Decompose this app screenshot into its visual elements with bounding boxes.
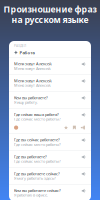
button[interactable]: Share xyxy=(81,125,85,130)
button[interactable]: Где вы работаете? xyxy=(9,151,91,167)
staticText: Кем вы работаете сейчас? xyxy=(14,188,61,193)
button[interactable]: Меня зовут Алексей. xyxy=(9,75,91,91)
staticText: Я могу работать здесь? xyxy=(14,176,56,181)
staticText: Произношение фраз xyxy=(3,3,96,15)
staticText: Меня зовут Алексей. xyxy=(14,83,51,88)
staticText: Где сейчас место работы? xyxy=(14,142,61,147)
staticText: Меня зовут Алексей. xyxy=(14,66,51,71)
staticText: Где вы работаете сейчас? xyxy=(14,171,60,176)
button[interactable]: Кем вы работаете сейчас? xyxy=(9,185,91,200)
button[interactable]: Кем вы работаете? xyxy=(9,92,91,108)
staticText: Где вы работаете? xyxy=(14,154,47,159)
staticText: Где сейчас место работы? xyxy=(14,116,61,122)
staticText: Я ищу работу. xyxy=(14,100,38,105)
button[interactable]: Favorite xyxy=(64,125,68,130)
button[interactable]: Play pronunciation xyxy=(14,125,18,130)
button[interactable]: Где вы сейчас работаете? xyxy=(9,134,91,150)
staticText: Я работаю в офисе. xyxy=(14,192,48,198)
staticText: Где сейчас ваша работа? xyxy=(14,112,59,117)
staticText: Где сейчас место работы? xyxy=(14,159,61,164)
staticText: на русском языке xyxy=(11,14,88,26)
staticText: Меня зовут Алексей. xyxy=(14,61,52,66)
staticText: РАЗДЕЛ xyxy=(14,44,26,48)
staticText: Меня зовут Алексей. xyxy=(14,78,52,83)
button[interactable]: Где вы работаете сейчас? xyxy=(9,168,91,184)
staticText: Работа xyxy=(20,50,35,55)
button[interactable]: Save xyxy=(72,125,77,130)
staticText: Кем вы работаете? xyxy=(14,95,48,100)
button[interactable]: Меня зовут Алексей. xyxy=(9,58,91,74)
staticText: Где вы сейчас работаете? xyxy=(14,137,60,142)
